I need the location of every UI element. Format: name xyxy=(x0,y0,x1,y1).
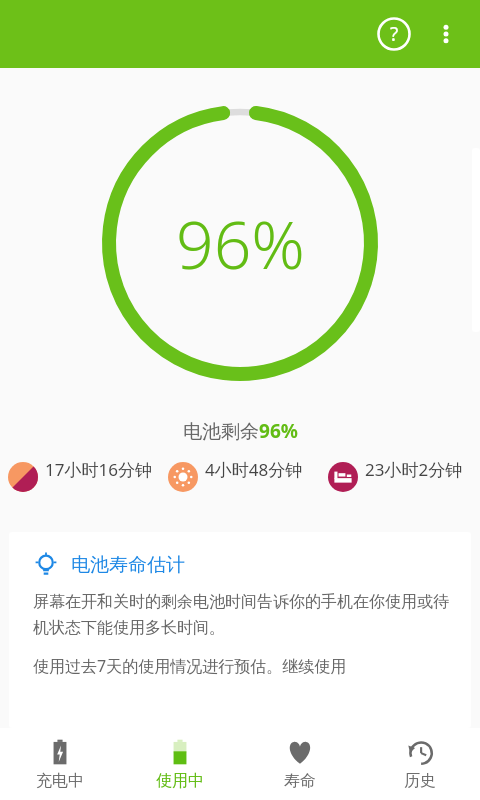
button[interactable]: 充电中 xyxy=(0,728,120,800)
staticText: 电池剩余96% xyxy=(183,418,298,444)
staticText: 96% xyxy=(176,198,305,288)
staticText: 使用过去7天的使用情况进行预估。继续使用 xyxy=(33,655,347,677)
staticText: 充电中 xyxy=(36,771,84,791)
button[interactable]: 使用中 xyxy=(120,728,240,800)
button[interactable]: More options xyxy=(424,12,468,56)
button[interactable]: 23小时2分钟 xyxy=(328,458,480,516)
staticText: ? xyxy=(390,21,399,47)
staticText: 17小时16分钟 xyxy=(45,458,152,481)
staticText: 使用中 xyxy=(156,771,204,791)
staticText: 历史 xyxy=(404,771,436,791)
staticText: 寿命 xyxy=(284,771,316,791)
button[interactable]: 历史 xyxy=(360,728,480,800)
button[interactable]: 寿命 xyxy=(240,728,360,800)
staticText: 屏幕在开和关时的剩余电池时间告诉你的手机在你使用或待机状态下能使用多长时间。 xyxy=(33,592,453,637)
button[interactable]: Help xyxy=(370,10,418,58)
button[interactable]: 4小时48分钟 xyxy=(168,458,320,516)
button[interactable]: 17小时16分钟 xyxy=(8,458,160,516)
button[interactable]: 电池寿命估计 xyxy=(9,532,471,728)
staticText: 23小时2分钟 xyxy=(365,458,463,481)
staticText: 电池寿命估计 xyxy=(71,553,185,577)
staticText: 4小时48分钟 xyxy=(205,458,303,481)
